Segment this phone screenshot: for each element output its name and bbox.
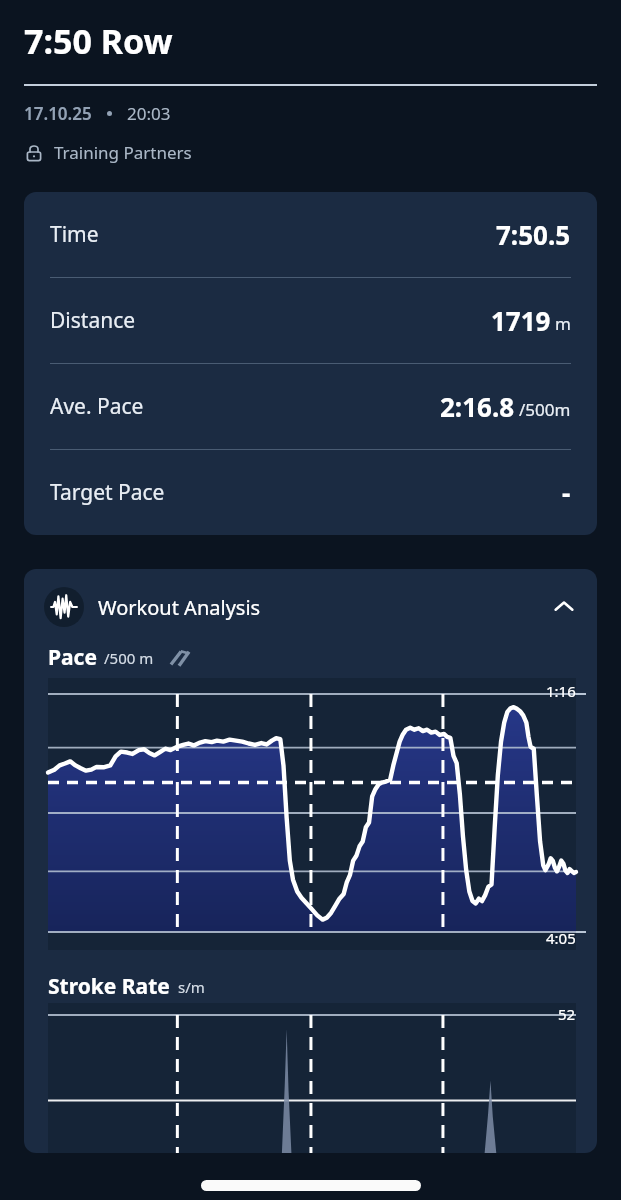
button[interactable]: Target Pace (24, 450, 597, 535)
staticText: /500m (519, 398, 571, 421)
staticText: 7:50 Row (24, 18, 173, 64)
button[interactable]: Distance (24, 278, 597, 363)
button[interactable]: Time (24, 192, 597, 277)
staticText: Ave. Pace (50, 392, 144, 421)
button[interactable]: Toggle pace chart (168, 646, 192, 670)
staticText: Time (50, 220, 99, 249)
staticText: 1:16 (546, 681, 576, 701)
staticText: 20:03 (127, 102, 171, 125)
staticText: 2:16.8 (440, 389, 515, 424)
staticText: - (562, 475, 571, 510)
button[interactable]: Collapse (549, 592, 579, 622)
staticText: Training Partners (54, 141, 192, 164)
button[interactable]: Training Partners (24, 141, 192, 164)
button[interactable]: Workout Analysis (24, 569, 597, 633)
staticText: 7:50.5 (496, 217, 571, 252)
staticText: s/m (178, 977, 205, 997)
staticText: 52 (558, 1004, 576, 1024)
staticText: Workout Analysis (98, 594, 261, 621)
staticText: Stroke Rate (48, 972, 170, 1001)
staticText: Target Pace (50, 478, 165, 507)
button[interactable]: Ave. Pace (24, 364, 597, 449)
staticText: 4:05 (546, 928, 576, 948)
staticText: /500 m (104, 648, 154, 668)
staticText: 1719 (491, 303, 551, 338)
staticText: m (555, 312, 571, 335)
staticText: 17.10.25 (24, 102, 92, 125)
staticText: Distance (50, 306, 136, 335)
staticText: Pace (48, 643, 97, 672)
